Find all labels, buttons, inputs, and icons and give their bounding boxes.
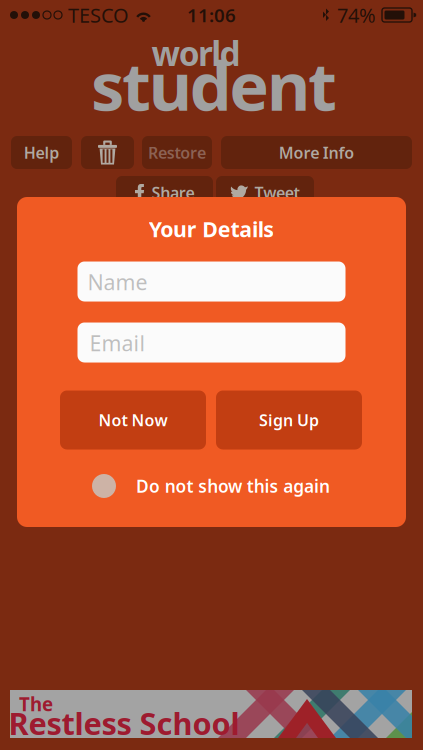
staticText: student — [91, 41, 337, 129]
staticText: Do not show this again — [136, 474, 330, 497]
button[interactable]: Share — [116, 176, 213, 209]
staticText: Sign Up — [259, 409, 319, 431]
staticText: Your Details — [149, 215, 274, 243]
button[interactable]: Help — [11, 136, 72, 169]
staticText: Help — [24, 142, 59, 163]
button[interactable]: Delete — [81, 136, 134, 169]
staticText: Not Now — [98, 409, 167, 431]
button[interactable]: Restore — [142, 136, 212, 169]
staticText: world — [152, 31, 240, 75]
staticText: Name — [87, 268, 147, 296]
staticText: Restless School — [8, 703, 239, 743]
staticText: Email — [89, 329, 145, 357]
staticText: 74% — [337, 2, 376, 28]
staticText: 11:06 — [187, 3, 236, 27]
staticText: The — [19, 692, 53, 716]
staticText: TESCO — [68, 2, 129, 28]
staticText: Restore — [148, 142, 206, 163]
button[interactable]: Tweet — [216, 176, 314, 209]
button[interactable]: Not Now — [60, 390, 206, 449]
staticText: Share — [151, 182, 195, 203]
button[interactable]: The Restless School advert — [10, 690, 412, 738]
staticText: Tweet — [254, 182, 300, 203]
button[interactable]: Sign Up — [216, 390, 362, 449]
staticText: More Info — [279, 142, 354, 163]
button[interactable]: Do not show this again — [92, 473, 322, 499]
button[interactable]: More Info — [221, 136, 412, 169]
